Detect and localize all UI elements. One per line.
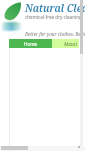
- staticText: Better for your clothes. Better for the …: [25, 31, 85, 37]
- staticText: Home: [24, 41, 38, 47]
- staticText: chemical-free dry cleaning: [25, 14, 82, 20]
- staticText: About: [64, 41, 78, 47]
- button[interactable]: Home: [9, 39, 52, 48]
- button[interactable]: About: [52, 39, 79, 48]
- staticText: Natural Cleaners: [25, 1, 85, 15]
